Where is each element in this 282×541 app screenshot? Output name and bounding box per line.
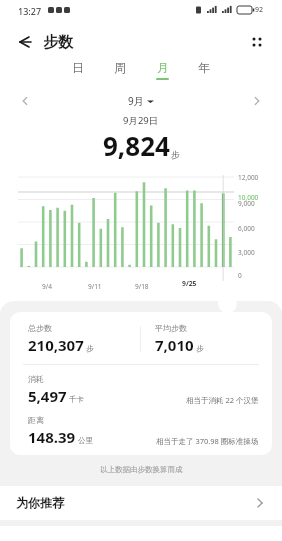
staticText: 3,000 bbox=[238, 248, 255, 257]
staticText: 210,307 bbox=[28, 335, 84, 355]
button[interactable]: More options bbox=[244, 29, 270, 55]
staticText: 为你推荐 bbox=[16, 495, 64, 510]
staticText: 步 bbox=[171, 149, 180, 160]
staticText: 12,000 bbox=[238, 173, 259, 182]
staticText: 以上数据由步数换算而成 bbox=[100, 465, 183, 474]
staticText: 周 bbox=[114, 60, 126, 75]
staticText: 7,010 bbox=[155, 335, 194, 355]
staticText: 92 bbox=[255, 5, 264, 15]
button[interactable]: Previous month bbox=[14, 90, 36, 112]
button[interactable]: Next month bbox=[246, 90, 268, 112]
button[interactable]: Back bbox=[10, 28, 38, 56]
staticText: 相当于消耗 22 个汉堡 bbox=[186, 395, 259, 405]
button[interactable]: 为你推荐 bbox=[0, 486, 282, 520]
staticText: 相当于走了 370.98 圈标准操场 bbox=[156, 436, 259, 446]
staticText: 6,000 bbox=[238, 224, 255, 233]
button[interactable]: 年 bbox=[183, 60, 225, 88]
staticText: 9/25 bbox=[182, 279, 197, 288]
staticText: 步 bbox=[86, 344, 94, 353]
staticText: 步数 bbox=[43, 33, 73, 52]
staticText: 9/18 bbox=[135, 282, 149, 291]
staticText: 总步数 bbox=[28, 323, 52, 333]
staticText: 148.39 bbox=[28, 427, 76, 447]
staticText: 年 bbox=[198, 60, 210, 75]
staticText: 9月29日 bbox=[123, 114, 159, 127]
button[interactable]: Expand bbox=[218, 294, 237, 313]
staticText: 9/11 bbox=[88, 282, 102, 291]
staticText: 10,000 bbox=[238, 193, 259, 202]
staticText: 步 bbox=[196, 344, 204, 353]
staticText: 平均步数 bbox=[155, 323, 187, 333]
button[interactable]: 总步数 bbox=[10, 312, 272, 455]
staticText: 9,824 bbox=[103, 128, 170, 163]
button[interactable]: 日 bbox=[57, 60, 99, 88]
staticText: 0 bbox=[238, 271, 242, 280]
staticText: 距离 bbox=[28, 415, 44, 425]
staticText: 千卡 bbox=[69, 395, 84, 404]
staticText: 9月 bbox=[128, 94, 144, 108]
button[interactable]: 周 bbox=[99, 60, 141, 88]
staticText: 月 bbox=[157, 60, 169, 75]
staticText: 公里 bbox=[78, 436, 93, 445]
staticText: 消耗 bbox=[28, 374, 44, 384]
staticText: 13:27 bbox=[18, 5, 42, 17]
button[interactable]: 月 bbox=[141, 60, 183, 88]
staticText: 9/4 bbox=[42, 282, 52, 291]
button[interactable]: 9月 bbox=[128, 94, 154, 108]
staticText: 日 bbox=[72, 60, 84, 75]
staticText: 9,000 bbox=[238, 199, 255, 208]
staticText: 5,497 bbox=[28, 386, 67, 406]
